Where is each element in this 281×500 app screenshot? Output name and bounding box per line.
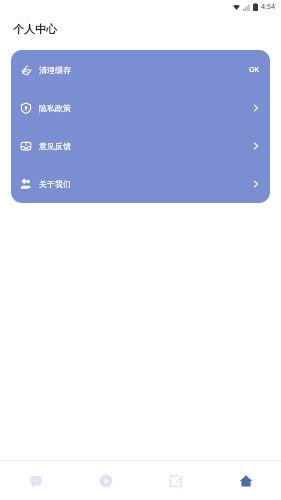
- staticText: 隐私政策: [39, 103, 71, 113]
- staticText: 个人中心: [13, 22, 57, 36]
- button[interactable]: 清理缓存: [11, 50, 270, 89]
- staticText: OK: [249, 65, 259, 75]
- button[interactable]: Compose: [141, 461, 211, 500]
- button[interactable]: 关于我们: [11, 165, 270, 203]
- staticText: 清理缓存: [39, 65, 71, 75]
- button[interactable]: Play: [71, 461, 141, 500]
- button[interactable]: 隐私政策: [11, 89, 270, 127]
- button[interactable]: Home: [211, 461, 281, 500]
- button[interactable]: Messages: [0, 461, 71, 500]
- staticText: 关于我们: [39, 179, 71, 189]
- button[interactable]: 意见反馈: [11, 127, 270, 165]
- staticText: 意见反馈: [39, 141, 71, 151]
- staticText: 4:54: [261, 2, 275, 12]
